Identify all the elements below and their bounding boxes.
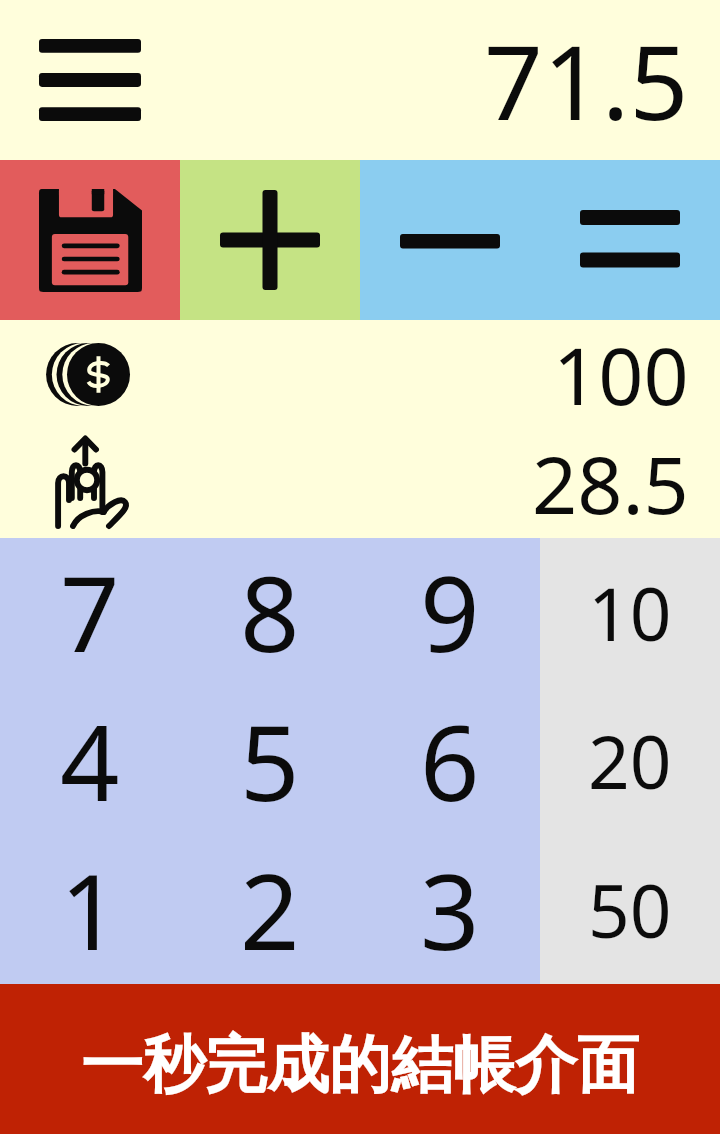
button[interactable]: 50 <box>540 835 720 984</box>
button[interactable]: 4 <box>0 686 180 835</box>
button[interactable]: Add <box>180 160 360 320</box>
staticText: 20 <box>588 711 672 810</box>
staticText: 6 <box>420 690 480 832</box>
staticText: 71.5 <box>484 10 689 150</box>
button[interactable]: 10 <box>540 538 720 686</box>
button[interactable]: Save <box>0 160 180 320</box>
button[interactable]: 3 <box>360 835 540 984</box>
staticText: 8 <box>240 541 300 683</box>
button[interactable]: Cash received 100 <box>0 320 720 429</box>
staticText: 4 <box>60 690 120 832</box>
button[interactable]: 7 <box>0 538 180 686</box>
button[interactable]: 20 <box>540 686 720 835</box>
staticText: 2 <box>240 839 300 981</box>
staticText: 9 <box>420 541 480 683</box>
button[interactable]: 1 <box>0 835 180 984</box>
staticText: 100 <box>553 321 689 429</box>
button[interactable]: Equals <box>540 160 720 320</box>
staticText: 10 <box>588 563 672 662</box>
button[interactable]: 6 <box>360 686 540 835</box>
staticText: 3 <box>420 839 480 981</box>
staticText: 5 <box>240 690 300 832</box>
button[interactable]: 9 <box>360 538 540 686</box>
staticText: 7 <box>60 541 120 683</box>
button[interactable]: 一秒完成的結帳介面 <box>0 984 720 1134</box>
button[interactable]: Menu <box>16 10 164 150</box>
button[interactable]: Subtract <box>360 160 540 320</box>
button[interactable]: 8 <box>180 538 360 686</box>
staticText: 28.5 <box>532 430 689 538</box>
button[interactable]: 5 <box>180 686 360 835</box>
staticText: 一秒完成的結帳介面 <box>81 1026 639 1104</box>
button[interactable]: 2 <box>180 835 360 984</box>
staticText: 1 <box>60 839 120 981</box>
button[interactable]: Change 28.5 <box>0 429 720 538</box>
staticText: 50 <box>588 860 672 959</box>
